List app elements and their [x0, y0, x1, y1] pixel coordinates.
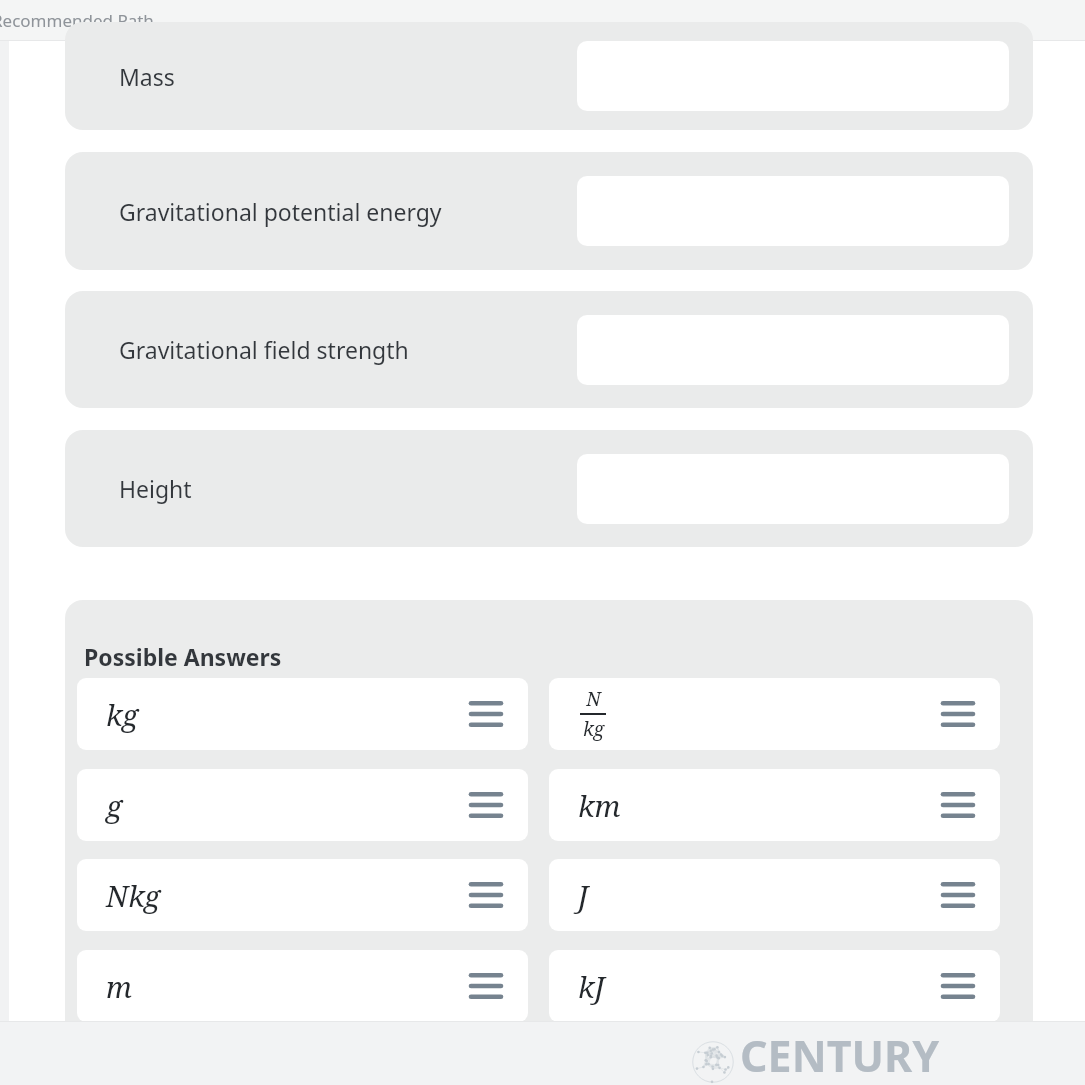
- staticText: g: [106, 786, 123, 825]
- staticText: J: [578, 876, 589, 915]
- staticText: Nkg: [106, 876, 161, 915]
- button[interactable]: Gravitational potential energy: [65, 152, 1033, 270]
- staticText: km: [578, 786, 621, 825]
- button[interactable]: km: [549, 769, 1000, 841]
- other: Drag handle: [466, 875, 506, 915]
- button[interactable]: J: [549, 859, 1000, 931]
- staticText: N: [586, 686, 601, 712]
- other: Drag handle: [466, 694, 506, 734]
- staticText: CENTURY: [740, 1026, 940, 1085]
- other: Drag handle: [938, 875, 978, 915]
- button[interactable]: g: [77, 769, 528, 841]
- staticText: Possible Answers: [84, 641, 282, 672]
- staticText: Recommended Path: [0, 9, 154, 32]
- staticText: kg: [583, 716, 604, 742]
- other: Drag handle: [466, 966, 506, 1006]
- other: Drag handle: [938, 785, 978, 825]
- staticText: m: [106, 967, 132, 1006]
- button[interactable]: kJ: [549, 950, 1000, 1022]
- button[interactable]: N: [549, 678, 1000, 750]
- other: Drag handle: [938, 966, 978, 1006]
- button[interactable]: Height: [65, 430, 1033, 547]
- button[interactable]: Nkg: [77, 859, 528, 931]
- staticText: Mass: [119, 61, 175, 92]
- button[interactable]: m: [77, 950, 528, 1022]
- staticText: Gravitational potential energy: [119, 196, 442, 227]
- staticText: Gravitational field strength: [119, 334, 409, 365]
- button[interactable]: Mass: [65, 22, 1033, 130]
- staticText: Height: [119, 473, 192, 504]
- staticText: kg: [106, 695, 139, 734]
- other: Drag handle: [938, 694, 978, 734]
- staticText: kJ: [578, 967, 605, 1006]
- button[interactable]: kg: [77, 678, 528, 750]
- other: Drag handle: [466, 785, 506, 825]
- button[interactable]: Gravitational field strength: [65, 291, 1033, 408]
